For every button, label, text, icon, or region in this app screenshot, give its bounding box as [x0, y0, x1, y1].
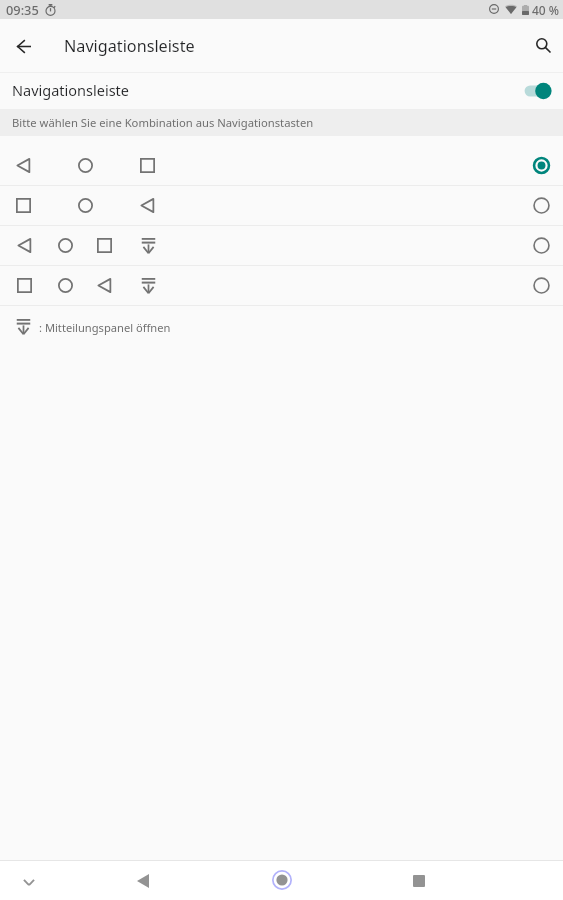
button[interactable] [0, 185, 563, 225]
button[interactable]: Back [86, 861, 200, 900]
button[interactable]: Search [528, 30, 558, 60]
staticText: 09:35 [6, 1, 39, 18]
button[interactable]: Back [8, 30, 40, 62]
button[interactable]: Home [200, 861, 352, 900]
button[interactable] [0, 265, 563, 305]
staticText: Bitte wählen Sie eine Kombination aus Na… [12, 115, 314, 130]
staticText: 40 % [532, 2, 560, 18]
staticText: : Mitteilungspanel öffnen [39, 320, 171, 335]
button[interactable]: Recent apps [352, 861, 492, 900]
button[interactable]: Hide keyboard [0, 861, 86, 900]
button[interactable] [0, 145, 563, 185]
staticText: Navigationsleiste [12, 80, 129, 100]
staticText: Navigationsleiste [64, 35, 195, 57]
button[interactable] [0, 225, 563, 265]
button[interactable]: Navigationsleiste [0, 72, 563, 109]
